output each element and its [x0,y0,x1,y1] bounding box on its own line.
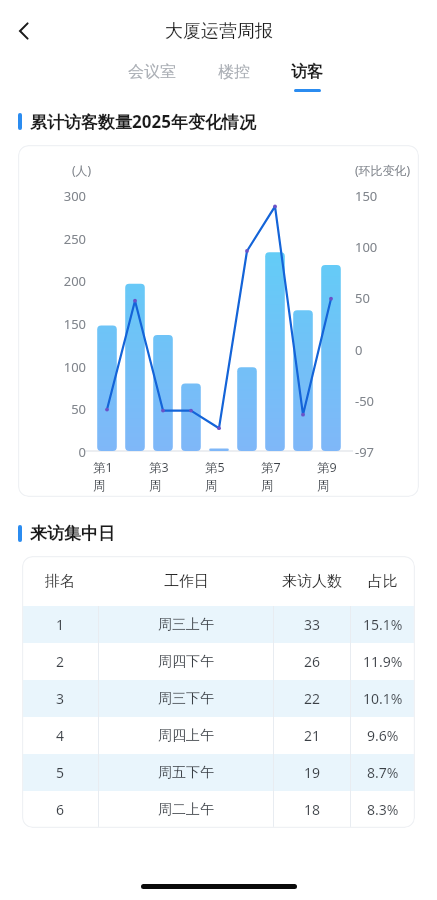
staticText: 周五下午 [158,764,214,782]
staticText: 周四上午 [158,727,214,745]
staticText: 第1周 [93,459,121,493]
staticText: 50 [32,400,86,418]
staticText: 8.7% [367,763,399,782]
button[interactable]: 5 [22,754,415,791]
staticText: 200 [32,272,86,290]
staticText: 19 [304,763,321,782]
staticText: 50 [355,289,407,307]
staticText: 累计访客数量2025年变化情况 [30,110,256,133]
button[interactable]: 会议室 [126,62,178,92]
staticText: 22 [304,689,321,708]
staticText: 周二上午 [158,801,214,819]
button[interactable]: Back [2,9,46,53]
staticText: 2 [56,652,65,671]
staticText: 21 [304,726,321,745]
button[interactable]: 3 [22,680,415,717]
staticText: 会议室 [128,62,176,82]
staticText: 9.6% [367,726,399,745]
staticText: 33 [304,615,321,634]
button[interactable]: 6 [22,791,415,828]
staticText: 排名 [45,572,75,591]
staticText: 楼控 [218,62,250,82]
staticText: 150 [355,187,407,205]
button[interactable]: 4 [22,717,415,754]
staticText: 0 [355,341,407,359]
staticText: 第7周 [261,459,289,493]
button[interactable]: 访客 [289,62,325,92]
staticText: 来访集中日 [30,523,115,544]
staticText: 8.3% [367,800,399,819]
staticText: 大厦运营周报 [165,20,273,43]
staticText: (环比变化) [355,162,411,178]
staticText: 5 [56,763,65,782]
staticText: 周四下午 [158,653,214,671]
button[interactable]: 楼控 [216,62,252,92]
staticText: 10.1% [363,689,403,708]
staticText: 3 [56,689,65,708]
staticText: 100 [355,238,407,256]
staticText: -97 [355,443,407,461]
staticText: 250 [32,230,86,248]
staticText: 0 [32,443,86,461]
staticText: 工作日 [164,572,209,591]
button[interactable]: 2 [22,643,415,680]
staticText: 26 [304,652,321,671]
staticText: 第5周 [205,459,233,493]
staticText: 周三下午 [158,690,214,708]
staticText: -50 [355,392,407,410]
staticText: 4 [56,726,65,745]
staticText: 15.1% [363,615,403,634]
staticText: 18 [304,800,321,819]
staticText: 100 [32,358,86,376]
staticText: 1 [56,615,65,634]
button[interactable]: 排名 [22,556,415,606]
staticText: 访客 [291,62,323,82]
button[interactable]: 1 [22,606,415,643]
staticText: 来访人数 [282,572,342,591]
staticText: 第9周 [317,459,345,493]
staticText: 6 [56,800,65,819]
staticText: (人) [72,162,92,178]
staticText: 150 [32,315,86,333]
staticText: 300 [32,187,86,205]
staticText: 11.9% [363,652,403,671]
staticText: 第3周 [149,459,177,493]
staticText: 周三上午 [158,616,214,634]
staticText: 占比 [368,572,398,591]
